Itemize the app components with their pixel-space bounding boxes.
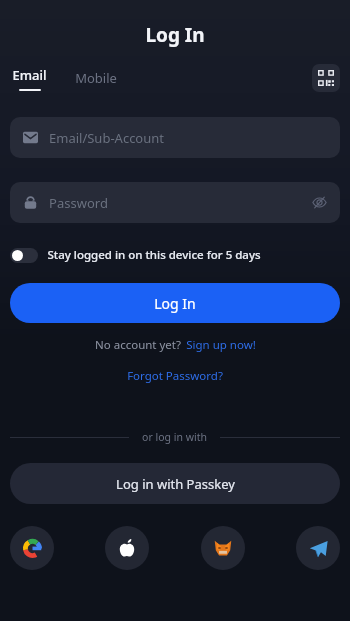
button[interactable]: Log in with MetaMask — [201, 526, 245, 570]
staticText: Email — [12, 66, 47, 84]
button[interactable]: Stay logged in on this device for 5 days — [10, 244, 261, 266]
button[interactable]: Email — [10, 66, 49, 91]
staticText: Stay logged in on this device for 5 days — [47, 247, 261, 263]
button[interactable]: Password — [10, 182, 340, 223]
button[interactable]: Log In — [10, 283, 340, 323]
button[interactable]: Scan QR code to log in — [312, 64, 340, 92]
staticText: Password — [49, 194, 108, 212]
staticText: No account yet? — [95, 337, 181, 353]
button[interactable]: Email or sub-account — [10, 117, 340, 158]
staticText: Sign up now! — [186, 337, 256, 353]
button[interactable]: Sign up now! — [186, 337, 256, 353]
staticText: Mobile — [75, 69, 117, 87]
staticText: Email/Sub-Account — [49, 129, 164, 147]
staticText: Forgot Password? — [127, 368, 223, 384]
button[interactable]: Log in with Google — [10, 526, 54, 570]
staticText: Log In — [145, 22, 205, 48]
button[interactable]: Forgot Password? — [121, 366, 229, 386]
staticText: or log in with — [142, 430, 207, 444]
button[interactable]: Log in with Telegram — [296, 526, 340, 570]
button[interactable]: Mobile — [73, 69, 119, 87]
staticText: Log In — [154, 294, 196, 313]
staticText: Log in with Passkey — [116, 475, 235, 493]
button[interactable]: Log in with Apple — [105, 526, 149, 570]
button[interactable]: Log in with Passkey — [10, 463, 340, 504]
